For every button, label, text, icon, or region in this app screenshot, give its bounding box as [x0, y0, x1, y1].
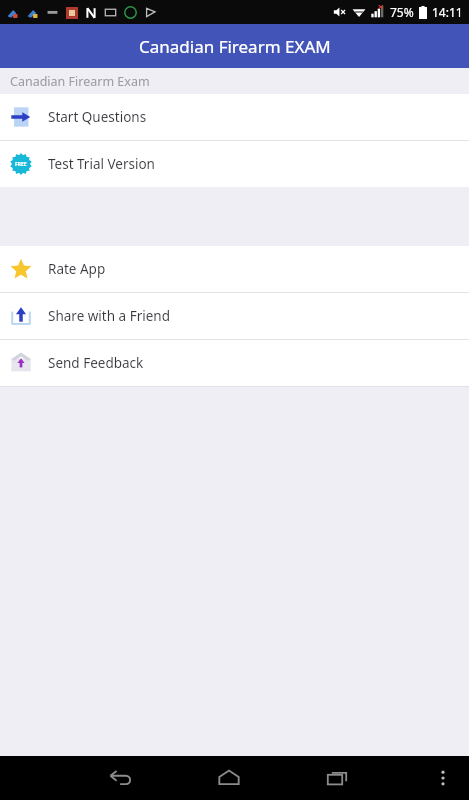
staticText: Send Feedback — [48, 354, 144, 372]
staticText: 75% — [390, 4, 414, 20]
staticText: Test Trial Version — [48, 155, 155, 173]
staticText: Canadian Firearm Exam — [10, 73, 150, 90]
staticText: 14:11 — [432, 4, 463, 20]
staticText: Rate App — [48, 260, 106, 278]
staticText: Start Questions — [48, 108, 147, 126]
button[interactable]: More options — [423, 758, 463, 798]
staticText: Share with a Friend — [48, 307, 170, 325]
button[interactable]: Home — [207, 756, 251, 800]
button[interactable]: Recent apps — [315, 756, 359, 800]
staticText: Canadian Firearm EXAM — [139, 35, 331, 58]
button[interactable]: Rate App — [0, 246, 469, 292]
button[interactable]: Back — [99, 756, 143, 800]
staticText: FREE — [15, 161, 27, 168]
button[interactable]: FREE — [0, 141, 469, 187]
button[interactable]: Share with a Friend — [0, 293, 469, 339]
button[interactable]: Send Feedback — [0, 340, 469, 386]
button[interactable]: Start Questions — [0, 94, 469, 140]
